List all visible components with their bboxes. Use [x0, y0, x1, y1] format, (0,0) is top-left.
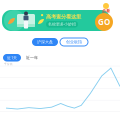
staticText: 近一年 [26, 55, 38, 60]
staticText: 近1天 [7, 55, 17, 60]
button[interactable]: 高考查分看这里 名校更多小妙招 [2, 10, 110, 31]
staticText: GO [98, 17, 110, 27]
staticText: 创业板指 [66, 39, 82, 44]
staticText: 必看 [102, 8, 110, 13]
button[interactable]: 创业板指 [60, 38, 88, 46]
button[interactable]: 近1天 [3, 54, 21, 61]
staticText: 沪深大盘 [37, 39, 53, 44]
button[interactable]: 沪深大盘 [32, 38, 58, 46]
staticText: 千分比 [4, 62, 13, 66]
staticText: 高考查分看这里 [46, 13, 81, 20]
button[interactable]: 近一年 [26, 55, 38, 60]
button[interactable]: GO [95, 13, 113, 31]
staticText: 名校更多小妙招 [48, 22, 76, 27]
